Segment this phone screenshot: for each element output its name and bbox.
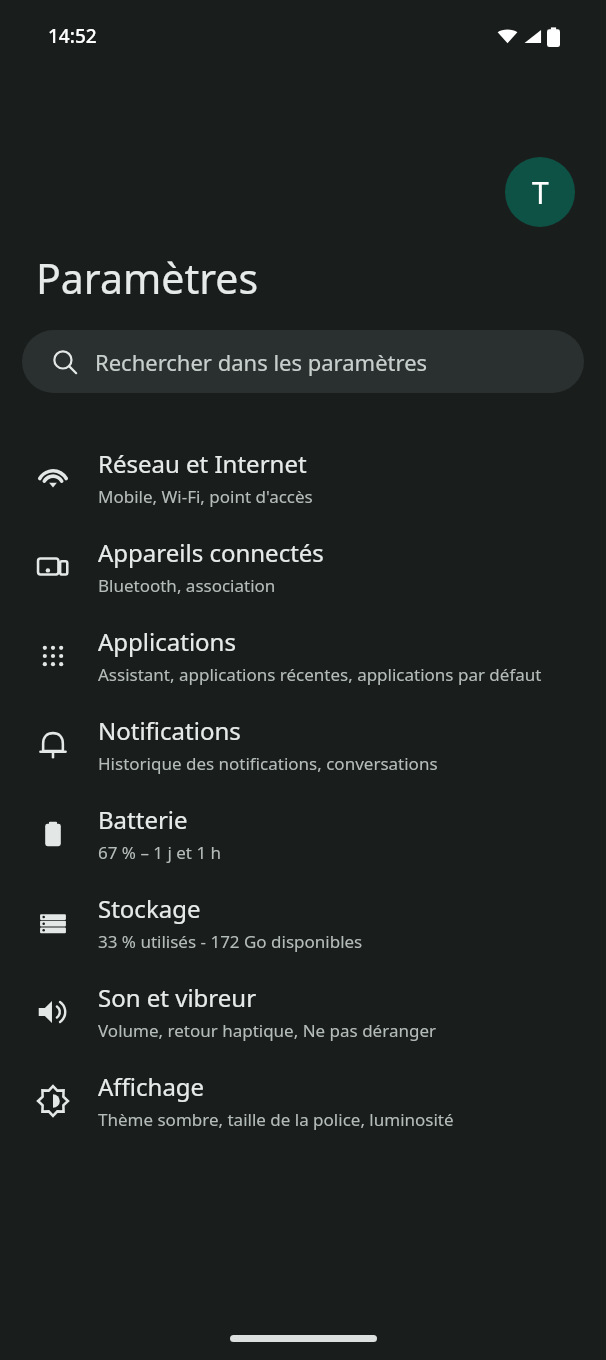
staticText: Affichage xyxy=(98,1070,205,1103)
staticText: 14:52 xyxy=(48,23,97,49)
button[interactable]: Appareils connectés xyxy=(0,522,606,611)
button[interactable]: Notifications xyxy=(0,700,606,789)
staticText: Paramètres xyxy=(36,250,259,306)
staticText: Historique des notifications, conversati… xyxy=(98,752,438,775)
button[interactable]: Applications xyxy=(0,611,606,700)
staticText: Rechercher dans les paramètres xyxy=(95,347,428,377)
staticText: Stockage xyxy=(98,892,201,925)
button[interactable]: Batterie xyxy=(0,789,606,878)
button[interactable]: Stockage xyxy=(0,878,606,967)
button[interactable]: Réseau et Internet xyxy=(0,433,606,522)
button[interactable]: Rechercher dans les paramètres xyxy=(22,330,584,393)
staticText: 33 % utilisés - 172 Go disponibles xyxy=(98,930,363,953)
staticText: Appareils connectés xyxy=(98,536,324,569)
staticText: Batterie xyxy=(98,803,188,836)
staticText: Applications xyxy=(98,625,236,658)
staticText: Réseau et Internet xyxy=(98,447,307,480)
staticText: Volume, retour haptique, Ne pas déranger xyxy=(98,1019,436,1042)
staticText: 67 % – 1 j et 1 h xyxy=(98,841,222,864)
staticText: Thème sombre, taille de la police, lumin… xyxy=(98,1108,454,1131)
staticText: Mobile, Wi-Fi, point d'accès xyxy=(98,485,313,508)
staticText: Assistant, applications récentes, applic… xyxy=(98,663,542,686)
staticText: T xyxy=(532,172,549,213)
button[interactable]: Affichage xyxy=(0,1056,606,1145)
staticText: Notifications xyxy=(98,714,241,747)
button[interactable]: Son et vibreur xyxy=(0,967,606,1056)
button[interactable]: Compte xyxy=(505,157,575,227)
staticText: Bluetooth, association xyxy=(98,574,276,597)
staticText: Son et vibreur xyxy=(98,981,257,1014)
